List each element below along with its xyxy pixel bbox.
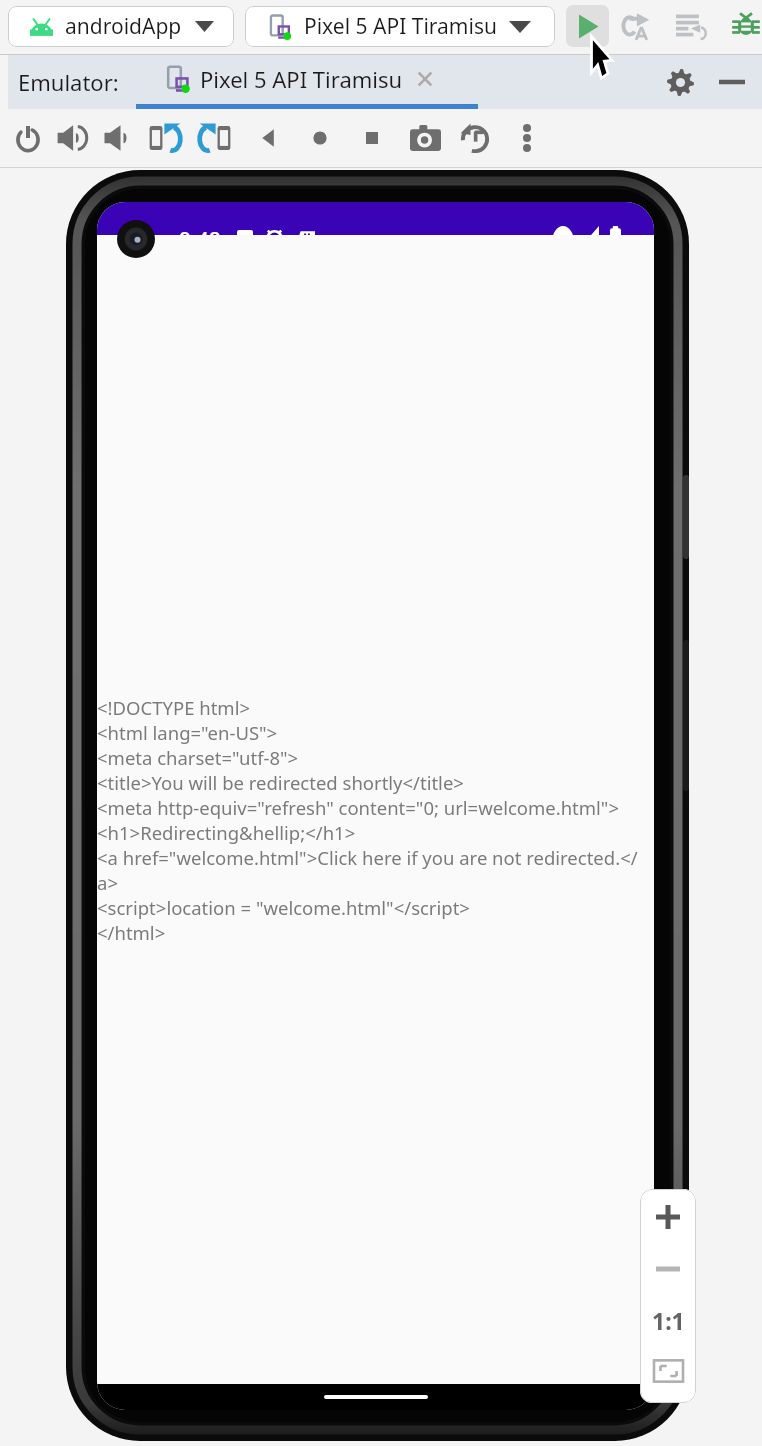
button[interactable]: Volume down [91,113,141,163]
button[interactable]: Home [295,113,345,163]
button[interactable]: Screenshot [400,113,450,163]
staticText: <a href="welcome.html">Click here if you… [97,845,638,870]
staticText: <!DOCTYPE html> [97,695,251,720]
button[interactable]: Minimize [710,60,754,104]
button[interactable]: Rotate right [190,113,240,163]
button[interactable]: Overview [347,113,397,163]
button[interactable]: Power [3,113,53,163]
staticText: <meta http-equiv="refresh" content="0; u… [97,795,619,820]
staticText: Pixel 5 API Tiramisu [200,64,403,94]
button[interactable]: Zoom in [640,1191,696,1243]
button[interactable]: Settings [658,60,702,104]
staticText: <meta charset="utf-8"> [97,745,299,770]
staticText: androidApp [65,12,182,41]
staticText: <script>location = "welcome.html"</scrip… [97,895,470,920]
button[interactable]: Run [566,5,609,47]
staticText: 1:1 [652,1305,685,1336]
button[interactable]: Back [244,113,294,163]
button[interactable]: Fit to screen [640,1345,696,1397]
button[interactable]: Rotate left [140,113,190,163]
button[interactable]: androidApp [8,6,234,47]
staticText: </html> [97,920,166,945]
button[interactable]: Pixel 5 API Tiramisu [245,6,555,47]
button[interactable]: More [502,113,552,163]
button[interactable]: Actual size [640,1294,696,1346]
button[interactable]: Zoom out [640,1243,696,1295]
staticText: Emulator: [18,67,119,97]
button[interactable]: Debug [724,4,762,48]
button[interactable]: Apply code changes [669,4,713,48]
staticText: Pixel 5 API Tiramisu [304,12,497,41]
staticText: <h1>Redirecting&hellip;</h1> [97,820,356,845]
button[interactable]: Volume up [47,113,97,163]
staticText: <html lang="en-US"> [97,720,278,745]
staticText: 9:48 [179,226,221,235]
button[interactable]: Pixel 5 API Tiramisu [136,54,478,104]
button[interactable]: Snapshots [450,113,500,163]
button[interactable]: Apply changes [614,4,658,48]
staticText: a> [97,870,118,895]
staticText: <title>You will be redirected shortly</t… [97,770,464,795]
